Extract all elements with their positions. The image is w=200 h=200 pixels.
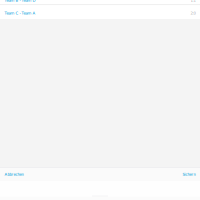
staticText: 1:1 (190, 0, 195, 2)
staticText: Sichern (182, 172, 195, 177)
button[interactable]: Abbrechen (0, 168, 28, 181)
staticText: Team B - Team D (4, 0, 35, 2)
staticText: Team C - Team A (4, 11, 35, 15)
button[interactable]: Team B - Team D (0, 0, 200, 14)
staticText: 2:0 (190, 11, 195, 15)
staticText: Abbrechen (4, 172, 23, 177)
button[interactable]: Sichern (178, 168, 200, 181)
button[interactable]: Team C - Team A (0, 0, 200, 14)
